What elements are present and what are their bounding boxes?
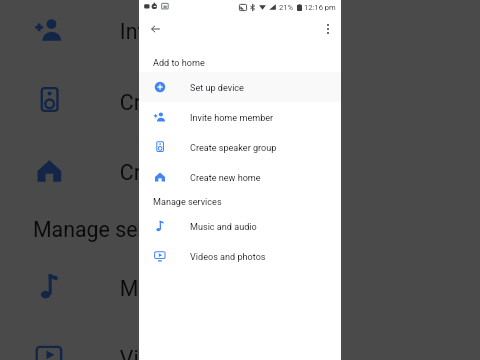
staticText: 12:16 pm (304, 3, 336, 12)
staticText: Add to home (153, 58, 205, 69)
staticText: Invite home member (190, 113, 274, 124)
staticText: 21% (279, 3, 294, 12)
staticText: Music and audio (190, 222, 257, 233)
staticText: Create speaker group (120, 91, 324, 117)
staticText: Create new home (190, 173, 261, 184)
staticText: Music and audio (120, 277, 277, 303)
staticText: Set up device (190, 83, 244, 94)
button[interactable]: Create speaker group (139, 132, 341, 162)
button[interactable]: Invite home member (139, 102, 341, 132)
button[interactable]: Set up device (139, 72, 341, 102)
staticText: Videos and photos (190, 252, 266, 263)
button[interactable]: Back (143, 17, 167, 41)
staticText: Create new home (120, 162, 287, 187)
staticText: Manage services (153, 197, 222, 208)
staticText: Create speaker group (190, 143, 277, 154)
staticText: Manage services (33, 218, 195, 244)
button[interactable]: Videos and photos (139, 241, 341, 271)
button[interactable]: Music and audio (139, 211, 341, 241)
staticText: Videos and photos (120, 347, 298, 360)
button[interactable]: Create new home (139, 162, 341, 192)
button[interactable]: More options (316, 17, 340, 41)
staticText: Invite home member (120, 21, 317, 46)
